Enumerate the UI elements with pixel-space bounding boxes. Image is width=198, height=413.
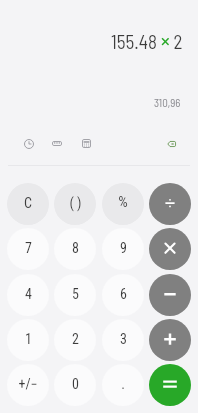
- staticText: 8: [72, 240, 79, 256]
- button[interactable]: ( ): [54, 183, 96, 225]
- button[interactable]: 0: [54, 364, 96, 406]
- button[interactable]: History: [18, 133, 40, 155]
- button[interactable]: 9: [102, 228, 144, 270]
- staticText: +/−: [18, 376, 38, 392]
- button[interactable]: 3: [102, 319, 144, 361]
- button[interactable]: C: [7, 183, 49, 225]
- staticText: 3: [120, 331, 127, 347]
- button[interactable]: 5: [54, 274, 96, 316]
- staticText: .: [121, 376, 125, 392]
- button[interactable]: +/−: [7, 364, 49, 406]
- button[interactable]: 6: [102, 274, 144, 316]
- staticText: 1: [25, 331, 32, 347]
- button[interactable]: Divide: [149, 183, 191, 225]
- staticText: 0: [72, 376, 79, 392]
- button[interactable]: 8: [54, 228, 96, 270]
- button[interactable]: Scientific calculator: [75, 132, 97, 154]
- button[interactable]: 7: [7, 228, 49, 270]
- staticText: ( ): [69, 195, 82, 211]
- button[interactable]: %: [102, 183, 144, 225]
- staticText: 155.48 × 2: [111, 26, 183, 54]
- button[interactable]: Equals: [149, 364, 191, 406]
- button[interactable]: .: [102, 364, 144, 406]
- staticText: %: [118, 193, 128, 211]
- button[interactable]: 1: [7, 319, 49, 361]
- button[interactable]: Backspace: [160, 133, 182, 155]
- button[interactable]: 2: [54, 319, 96, 361]
- staticText: 9: [120, 240, 127, 256]
- button[interactable]: 4: [7, 274, 49, 316]
- button[interactable]: Add: [149, 319, 191, 361]
- button[interactable]: Multiply: [149, 228, 191, 270]
- staticText: 4: [25, 286, 32, 302]
- staticText: 310,96: [154, 96, 181, 109]
- staticText: 2: [72, 331, 79, 347]
- button[interactable]: Subtract: [149, 274, 191, 316]
- button[interactable]: Unit converter: [46, 132, 68, 154]
- staticText: C: [24, 195, 32, 211]
- staticText: 6: [120, 286, 127, 302]
- staticText: 7: [25, 240, 32, 256]
- staticText: 5: [72, 286, 79, 302]
